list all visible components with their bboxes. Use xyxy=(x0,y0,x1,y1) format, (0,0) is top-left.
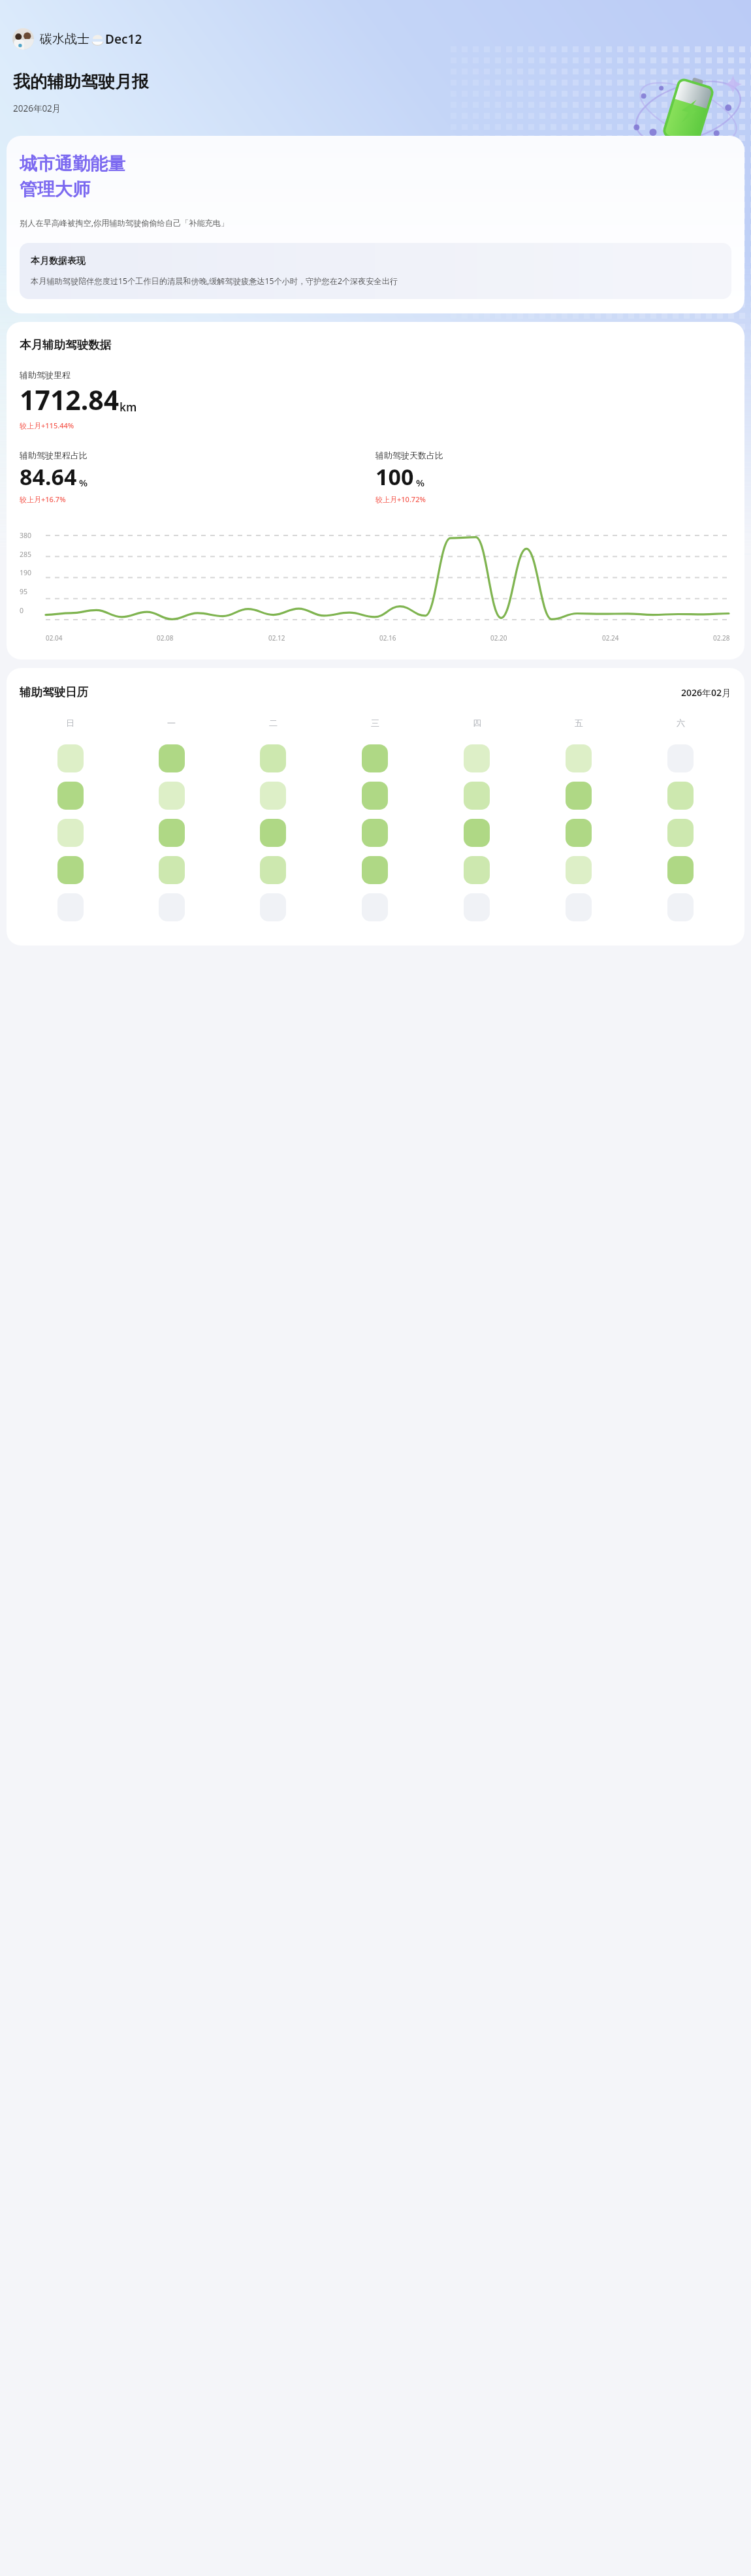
button[interactable]: 辅助驾驶日历 xyxy=(7,668,744,946)
staticText: Dec12 xyxy=(105,31,142,48)
button[interactable] xyxy=(362,819,388,847)
button[interactable] xyxy=(566,782,592,810)
button[interactable] xyxy=(362,744,388,772)
button[interactable] xyxy=(667,744,694,772)
button[interactable] xyxy=(566,819,592,847)
staticText: 84.64 xyxy=(20,462,77,492)
button[interactable] xyxy=(260,782,286,810)
button[interactable] xyxy=(57,893,84,921)
button[interactable] xyxy=(464,782,490,810)
staticText: 较上月+10.72% xyxy=(375,494,426,504)
staticText: 02.08 xyxy=(157,633,174,643)
staticText: 辅助驾驶日历 xyxy=(20,685,88,699)
button[interactable] xyxy=(159,893,185,921)
button[interactable] xyxy=(464,893,490,921)
staticText: 管理大师 xyxy=(20,178,90,200)
button[interactable] xyxy=(667,819,694,847)
button[interactable] xyxy=(667,782,694,810)
staticText: 较上月+16.7% xyxy=(20,494,66,504)
staticText: 一 xyxy=(167,718,176,728)
staticText: 本月辅助驾驶数据 xyxy=(20,338,111,352)
staticText: 我的辅助驾驶月报 xyxy=(13,71,149,93)
button[interactable]: 辅助驾驶里程占比 xyxy=(20,450,375,504)
staticText: 二 xyxy=(269,718,278,728)
staticText: 别人在早高峰被掏空,你用辅助驾驶偷偷给自己「补能充电」 xyxy=(20,217,229,229)
button[interactable] xyxy=(159,782,185,810)
staticText: 02.20 xyxy=(490,633,507,643)
staticText: 95 xyxy=(20,587,28,596)
staticText: 02.16 xyxy=(379,633,396,643)
staticText: % xyxy=(79,476,88,489)
staticText: 日 xyxy=(66,718,74,728)
button[interactable] xyxy=(566,893,592,921)
button[interactable] xyxy=(362,893,388,921)
staticText: 辅助驾驶里程占比 xyxy=(20,450,88,460)
button[interactable] xyxy=(260,856,286,884)
staticText: 较上月+115.44% xyxy=(20,421,74,430)
button[interactable] xyxy=(566,856,592,884)
staticText: km xyxy=(120,400,137,415)
button[interactable] xyxy=(667,893,694,921)
staticText: % xyxy=(416,476,425,489)
staticText: 0 xyxy=(20,606,24,615)
staticText: 六 xyxy=(677,718,685,728)
button[interactable]: 本月辅助驾驶数据 xyxy=(7,322,744,660)
button[interactable] xyxy=(57,744,84,772)
button[interactable] xyxy=(260,893,286,921)
button[interactable] xyxy=(260,819,286,847)
staticText: 五 xyxy=(575,718,583,728)
button[interactable] xyxy=(362,856,388,884)
staticText: 三 xyxy=(371,718,379,728)
button[interactable]: 碳水战士 xyxy=(11,26,144,52)
button[interactable]: Daily assisted driving distance chart xyxy=(20,524,731,631)
staticText: 本月辅助驾驶陪伴您度过15个工作日的清晨和傍晚,缓解驾驶疲惫达15个小时，守护您… xyxy=(31,276,398,287)
staticText: 02.24 xyxy=(602,633,619,643)
button[interactable] xyxy=(159,744,185,772)
staticText: 02.28 xyxy=(713,633,730,643)
button[interactable] xyxy=(464,819,490,847)
staticText: 2026年02月 xyxy=(681,686,731,699)
button[interactable] xyxy=(362,782,388,810)
button[interactable] xyxy=(57,782,84,810)
button[interactable] xyxy=(159,819,185,847)
staticText: 100 xyxy=(375,462,414,492)
staticText: 2026年02月 xyxy=(13,103,61,114)
button[interactable]: 本月数据表现 xyxy=(20,243,731,299)
staticText: 本月数据表现 xyxy=(31,255,86,267)
staticText: 285 xyxy=(20,550,32,559)
staticText: 辅助驾驶里程 xyxy=(20,370,71,380)
staticText: 城市通勤能量 xyxy=(20,153,125,175)
staticText: 碳水战士 xyxy=(40,31,89,47)
staticText: 02.04 xyxy=(46,633,63,643)
staticText: 380 xyxy=(20,531,32,540)
button[interactable] xyxy=(464,744,490,772)
staticText: 四 xyxy=(473,718,481,728)
button[interactable] xyxy=(667,856,694,884)
button[interactable] xyxy=(57,819,84,847)
button[interactable] xyxy=(464,856,490,884)
staticText: 02.12 xyxy=(268,633,285,643)
staticText: 190 xyxy=(20,568,32,577)
button[interactable] xyxy=(260,744,286,772)
staticText: 1712.84 xyxy=(20,381,120,418)
button[interactable] xyxy=(159,856,185,884)
staticText: 辅助驾驶天数占比 xyxy=(375,450,443,460)
button[interactable] xyxy=(57,856,84,884)
button[interactable] xyxy=(566,744,592,772)
button[interactable]: 城市通勤能量 xyxy=(7,136,744,313)
button[interactable]: 辅助驾驶天数占比 xyxy=(375,450,731,504)
